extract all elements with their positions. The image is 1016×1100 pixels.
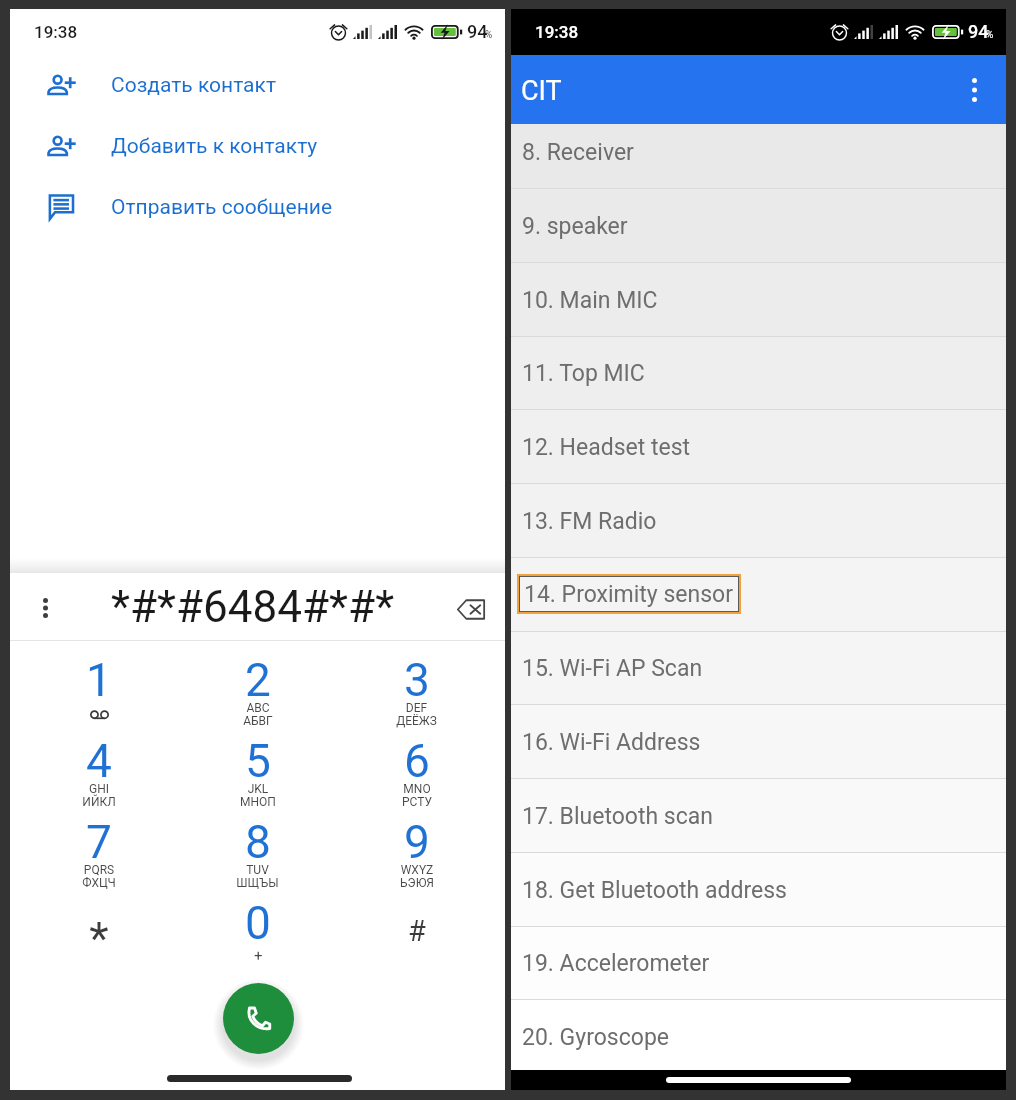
staticText: 15. Wi-Fi AP Scan	[522, 655, 703, 682]
staticText: 94	[467, 21, 488, 42]
staticText: 19. Accelerometer	[522, 950, 710, 977]
button[interactable]: 1	[19, 663, 178, 744]
button[interactable]: 16. Wi-Fi Address	[511, 705, 1006, 779]
staticText: 7	[86, 815, 112, 869]
staticText: 0	[245, 896, 271, 950]
staticText: 13. FM Radio	[522, 508, 657, 535]
staticText: 16. Wi-Fi Address	[522, 729, 701, 756]
button[interactable]: 13. FM Radio	[511, 484, 1006, 558]
button[interactable]: 9. speaker	[511, 189, 1006, 263]
button[interactable]: 19. Accelerometer	[511, 927, 1006, 1000]
staticText: 5	[245, 734, 271, 788]
staticText: 10. Main MIC	[522, 287, 658, 314]
staticText: Добавить к контакту	[111, 134, 318, 159]
button[interactable]: *	[19, 906, 178, 987]
button[interactable]: 18. Get Bluetooth address	[511, 853, 1006, 927]
button[interactable]: 14. Proximity sensor	[511, 558, 1006, 632]
button[interactable]: Создать контакт	[10, 55, 505, 116]
button[interactable]: Отправить сообщение	[10, 177, 505, 238]
button[interactable]: 2	[178, 663, 337, 744]
staticText: Создать контакт	[111, 73, 276, 98]
button[interactable]: 11. Top MIC	[511, 337, 1006, 410]
button[interactable]: 15. Wi-Fi AP Scan	[511, 632, 1006, 705]
staticText: 12. Headset test	[522, 434, 691, 461]
staticText: 18. Get Bluetooth address	[522, 877, 787, 904]
button[interactable]: 8	[178, 825, 337, 906]
staticText: 6	[404, 734, 430, 788]
staticText: 19:38	[34, 22, 78, 42]
staticText: %	[485, 29, 493, 41]
staticText: CIT	[521, 75, 562, 107]
button[interactable]: 6	[337, 744, 496, 825]
staticText: 20. Gyroscope	[522, 1024, 669, 1051]
staticText: 9	[404, 815, 430, 869]
staticText: 1	[86, 653, 112, 707]
staticText: 14. Proximity sensor	[524, 581, 734, 608]
staticText: ABC АБВГ	[243, 701, 273, 728]
staticText: WXYZ ЬЭЮЯ	[400, 863, 434, 890]
staticText: GHI ИЙКЛ	[82, 782, 116, 809]
staticText: Отправить сообщение	[111, 195, 333, 220]
button[interactable]: 3	[337, 663, 496, 744]
staticText: 11. Top MIC	[522, 360, 645, 387]
button[interactable]: 10. Main MIC	[511, 263, 1006, 337]
staticText: #	[408, 914, 426, 948]
button[interactable]: 5	[178, 744, 337, 825]
button[interactable]: #	[337, 906, 496, 987]
staticText: *	[89, 912, 109, 965]
staticText: *#*#6484#*#*	[111, 581, 395, 633]
staticText: JKL МНОП	[240, 782, 276, 809]
staticText: PQRS ФХЦЧ	[82, 863, 116, 890]
staticText: 8	[245, 815, 271, 869]
staticText: 17. Bluetooth scan	[522, 803, 713, 830]
button[interactable]: More options	[948, 55, 1006, 124]
button[interactable]: 7	[19, 825, 178, 906]
staticText: 2	[245, 653, 271, 707]
staticText: 3	[404, 653, 430, 707]
staticText: DEF ДЕЁЖЗ	[396, 701, 437, 728]
staticText: +	[254, 947, 263, 965]
staticText: 19:38	[535, 22, 579, 42]
staticText: 9. speaker	[522, 213, 628, 240]
button[interactable]: Backspace	[443, 573, 505, 640]
button[interactable]: Добавить к контакту	[10, 116, 505, 177]
staticText: %	[986, 29, 994, 41]
button[interactable]: 9	[337, 825, 496, 906]
button[interactable]: Call	[223, 983, 294, 1054]
button[interactable]: More options	[10, 573, 72, 640]
button[interactable]: 4	[19, 744, 178, 825]
button[interactable]: 17. Bluetooth scan	[511, 779, 1006, 853]
button[interactable]: 20. Gyroscope	[511, 1000, 1006, 1070]
button[interactable]: 8. Receiver	[511, 124, 1006, 189]
staticText: TUV ШЩЪЫ	[236, 863, 279, 890]
button[interactable]: 0	[178, 906, 337, 987]
button[interactable]: 12. Headset test	[511, 410, 1006, 484]
staticText: 8. Receiver	[522, 139, 634, 166]
staticText: 94	[968, 21, 989, 42]
staticText: 4	[86, 734, 112, 788]
staticText: MNO РСТУ	[402, 782, 432, 809]
